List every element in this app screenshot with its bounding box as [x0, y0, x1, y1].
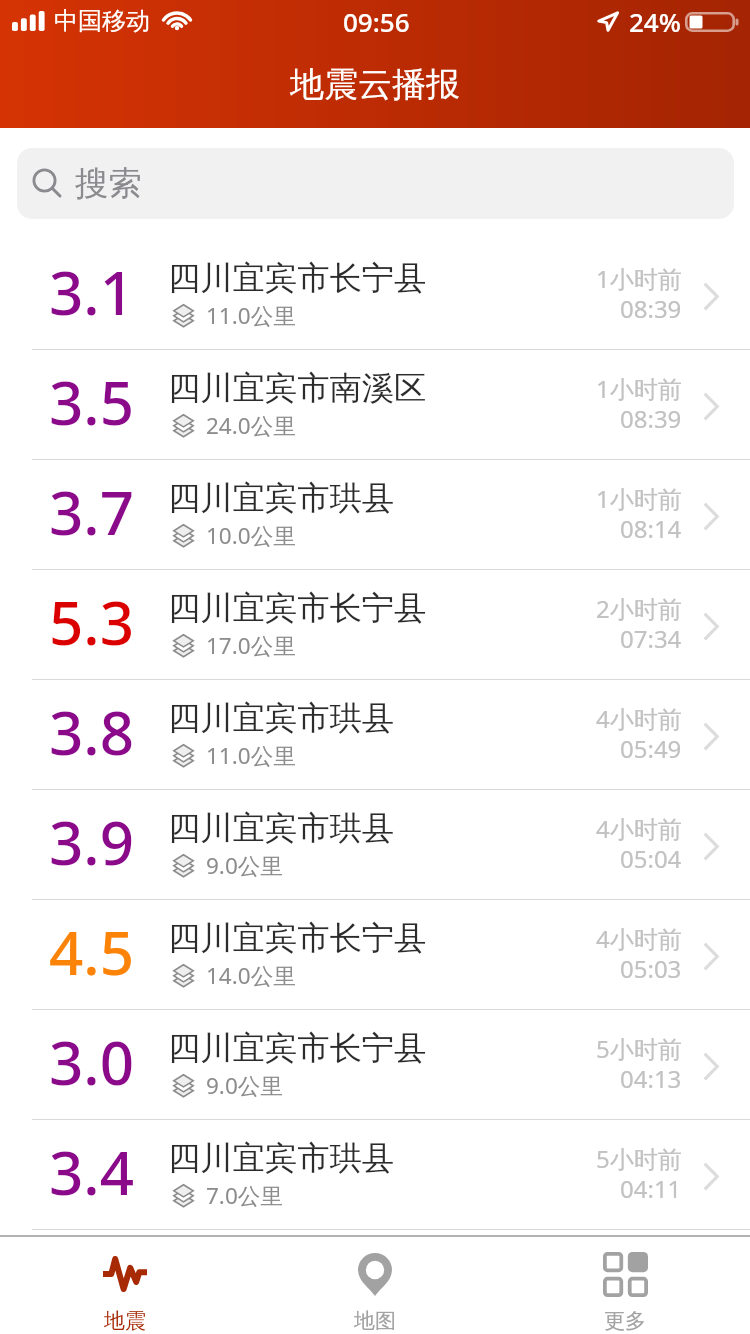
staticText: 08:39 [620, 292, 682, 325]
staticText: 3.7 [49, 471, 134, 553]
staticText: 5.3 [49, 581, 134, 663]
staticText: 3.8 [49, 691, 134, 773]
staticText: 3.5 [49, 361, 134, 443]
staticText: 05:04 [620, 842, 682, 875]
button[interactable]: 3.7 [0, 459, 750, 569]
staticText: 24% [629, 4, 681, 39]
staticText: 四川宜宾市珙县 [168, 698, 395, 739]
button[interactable]: 3.1 [0, 239, 750, 349]
staticText: 08:39 [620, 402, 682, 435]
staticText: 5小时前 [596, 1142, 682, 1175]
staticText: 17.0公里 [206, 630, 296, 661]
staticText: 05:49 [620, 732, 682, 765]
button[interactable]: 3.5 [0, 349, 750, 459]
button[interactable]: 4.5 [0, 899, 750, 1009]
staticText: 四川宜宾市南溪区 [168, 368, 427, 409]
staticText: 14.0公里 [206, 960, 296, 991]
button[interactable]: 更多 [500, 1237, 750, 1334]
staticText: 中国移动 [54, 6, 150, 36]
staticText: 四川宜宾市珙县 [168, 1138, 395, 1179]
staticText: 9.0公里 [206, 850, 283, 881]
button[interactable]: 3.9 [0, 789, 750, 899]
staticText: 四川宜宾市长宁县 [168, 588, 427, 629]
staticText: 11.0公里 [206, 740, 296, 771]
staticText: 24.0公里 [206, 410, 296, 441]
staticText: 更多 [604, 1308, 646, 1334]
staticText: 四川宜宾市长宁县 [168, 918, 427, 959]
staticText: 05:03 [620, 952, 682, 985]
staticText: 3.9 [49, 801, 134, 883]
staticText: 搜索 [75, 163, 142, 205]
staticText: 3.1 [49, 251, 134, 333]
staticText: 四川宜宾市长宁县 [168, 258, 427, 299]
staticText: 07:34 [620, 622, 682, 655]
staticText: 1小时前 [596, 372, 682, 405]
button[interactable]: 地图 [250, 1237, 500, 1334]
button[interactable]: 搜索 [17, 148, 734, 219]
button[interactable]: 5.3 [0, 569, 750, 679]
button[interactable]: 地震 [0, 1237, 250, 1334]
staticText: 04:11 [620, 1172, 682, 1205]
staticText: 1小时前 [596, 262, 682, 295]
staticText: 地图 [354, 1308, 396, 1334]
staticText: 9.0公里 [206, 1070, 283, 1101]
button[interactable]: 3.0 [0, 1009, 750, 1119]
staticText: 3.4 [49, 1131, 134, 1213]
staticText: 3.0 [49, 1021, 134, 1103]
staticText: 4小时前 [596, 812, 682, 845]
staticText: 09:56 [343, 4, 410, 39]
button[interactable]: 3.4 [0, 1119, 750, 1229]
staticText: 7.0公里 [206, 1180, 283, 1211]
staticText: 5小时前 [596, 1032, 682, 1065]
staticText: 04:13 [620, 1062, 682, 1095]
staticText: 地震云播报 [290, 63, 460, 106]
staticText: 11.0公里 [206, 300, 296, 331]
staticText: 地震 [104, 1308, 146, 1334]
staticText: 10.0公里 [206, 520, 296, 551]
button[interactable]: 3.8 [0, 679, 750, 789]
staticText: 4小时前 [596, 922, 682, 955]
staticText: 四川宜宾市长宁县 [168, 1028, 427, 1069]
staticText: 1小时前 [596, 482, 682, 515]
staticText: 08:14 [620, 512, 682, 545]
staticText: 4小时前 [596, 702, 682, 735]
staticText: 2小时前 [596, 592, 682, 625]
staticText: 4.5 [49, 911, 134, 993]
staticText: 四川宜宾市珙县 [168, 808, 395, 849]
staticText: 四川宜宾市珙县 [168, 478, 395, 519]
